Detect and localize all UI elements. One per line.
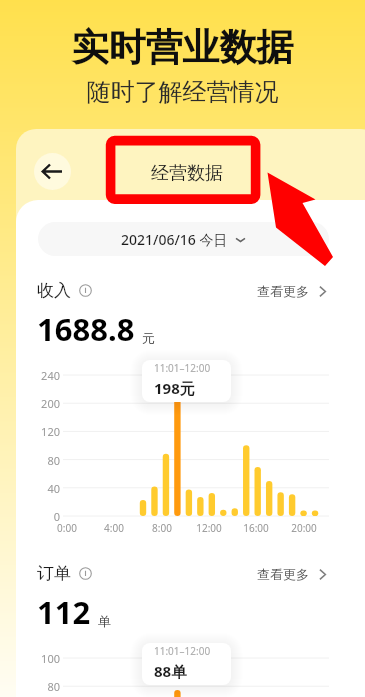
staticText: 240 bbox=[20, 368, 60, 383]
staticText: 0 bbox=[20, 509, 60, 524]
staticText: 2021/06/16 今日 bbox=[121, 230, 228, 249]
button[interactable]: Back bbox=[34, 153, 71, 190]
button[interactable]: 查看更多 bbox=[257, 566, 329, 582]
staticText: 112 bbox=[37, 591, 91, 633]
staticText: 20:00 bbox=[284, 521, 324, 535]
staticText: 120 bbox=[20, 424, 60, 439]
staticText: 12:00 bbox=[189, 521, 229, 535]
staticText: 80 bbox=[20, 679, 60, 694]
staticText: 198元 bbox=[154, 378, 195, 398]
staticText: 8:00 bbox=[142, 521, 182, 535]
staticText: 查看更多 bbox=[257, 283, 309, 299]
staticText: 实时营业数据 bbox=[0, 24, 365, 71]
staticText: 80 bbox=[20, 453, 60, 468]
staticText: 11:01–12:00 bbox=[154, 644, 211, 658]
staticText: 4:00 bbox=[94, 521, 134, 535]
staticText: 单 bbox=[98, 613, 111, 629]
staticText: 40 bbox=[20, 481, 60, 496]
staticText: 查看更多 bbox=[257, 566, 309, 582]
staticText: 11:01–12:00 bbox=[154, 361, 211, 375]
staticText: 经营数据 bbox=[151, 162, 223, 185]
staticText: 0:00 bbox=[47, 521, 87, 535]
staticText: 100 bbox=[20, 651, 60, 666]
staticText: 16:00 bbox=[236, 521, 276, 535]
button[interactable]: 2021/06/16 今日 bbox=[38, 222, 329, 256]
staticText: 随时了解经营情况 bbox=[0, 77, 365, 107]
staticText: 订单 bbox=[37, 563, 71, 584]
staticText: 88单 bbox=[154, 661, 187, 681]
staticText: 200 bbox=[20, 396, 60, 411]
staticText: 元 bbox=[142, 330, 155, 346]
staticText: 收入 bbox=[37, 280, 71, 301]
staticText: 1688.8 bbox=[37, 308, 135, 350]
button[interactable]: 经营数据 bbox=[136, 160, 237, 186]
button[interactable]: 查看更多 bbox=[257, 283, 329, 299]
